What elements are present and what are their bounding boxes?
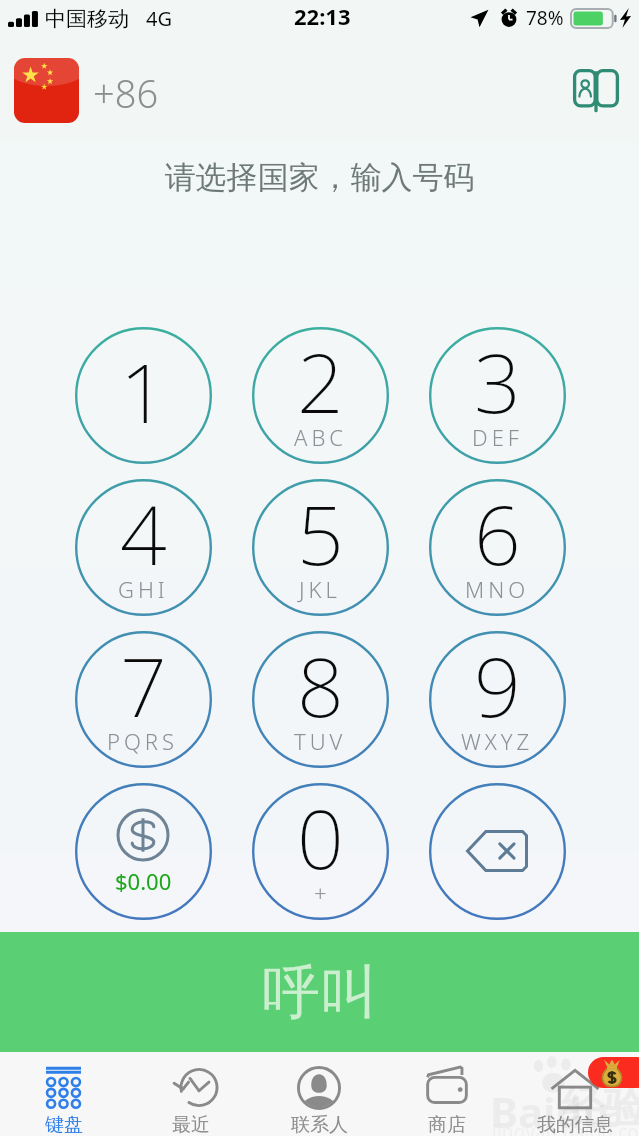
staticText: 4G: [146, 5, 172, 32]
button[interactable]: 8: [244, 623, 396, 775]
staticText: 0: [297, 781, 344, 893]
staticText: GHI: [118, 574, 169, 604]
button[interactable]: 6: [421, 471, 573, 623]
staticText: 78%: [526, 5, 564, 31]
button[interactable]: 呼叫: [0, 932, 639, 1052]
button[interactable]: 3: [421, 319, 573, 471]
staticText: jingyan.baidu.com: [492, 1119, 639, 1136]
staticText: 22:13: [294, 1, 351, 31]
staticText: WXYZ: [461, 726, 534, 756]
staticText: 7: [120, 629, 167, 741]
button[interactable]: 5: [244, 471, 396, 623]
staticText: 呼叫: [262, 956, 378, 1029]
button[interactable]: 我的信息: [511, 1052, 639, 1136]
staticText: 9: [474, 629, 521, 741]
staticText: Baidu: [490, 1083, 610, 1136]
staticText: 中国移动: [45, 6, 129, 32]
staticText: 最近: [172, 1113, 210, 1136]
button[interactable]: 商店: [383, 1052, 511, 1136]
button[interactable]: 0: [244, 775, 396, 927]
staticText: PQRS: [107, 726, 179, 756]
staticText: DEF: [472, 422, 523, 452]
staticText: 3: [474, 325, 521, 437]
staticText: 我的信息: [537, 1113, 613, 1136]
button[interactable]: Rewards: [588, 1057, 639, 1088]
staticText: 1: [120, 335, 167, 447]
button[interactable]: +86: [14, 58, 159, 123]
staticText: 6: [474, 477, 521, 589]
button[interactable]: 最近: [127, 1052, 255, 1136]
staticText: 5: [297, 477, 344, 589]
staticText: 联系人: [291, 1113, 348, 1136]
button[interactable]: 9: [421, 623, 573, 775]
staticText: 4: [120, 477, 167, 589]
button[interactable]: [421, 775, 573, 927]
staticText: ABC: [294, 422, 347, 452]
button[interactable]: Contacts: [571, 65, 621, 115]
staticText: 键盘: [45, 1113, 83, 1136]
staticText: +: [314, 878, 327, 908]
staticText: TUV: [294, 726, 347, 756]
button[interactable]: 4: [67, 471, 219, 623]
button[interactable]: 1: [67, 319, 219, 471]
button[interactable]: 7: [67, 623, 219, 775]
staticText: 请选择国家，输入号码: [0, 158, 639, 197]
staticText: 8: [297, 629, 344, 741]
button[interactable]: $0.00: [67, 775, 219, 927]
staticText: $0.00: [115, 866, 172, 896]
staticText: MNO: [465, 574, 530, 604]
staticText: 经验: [562, 1082, 639, 1135]
staticText: 商店: [428, 1113, 466, 1136]
staticText: JKL: [299, 574, 341, 604]
button[interactable]: 键盘: [0, 1052, 127, 1136]
button[interactable]: 2: [244, 319, 396, 471]
button[interactable]: 联系人: [255, 1052, 383, 1136]
staticText: 2: [297, 325, 344, 437]
staticText: +86: [93, 67, 159, 119]
